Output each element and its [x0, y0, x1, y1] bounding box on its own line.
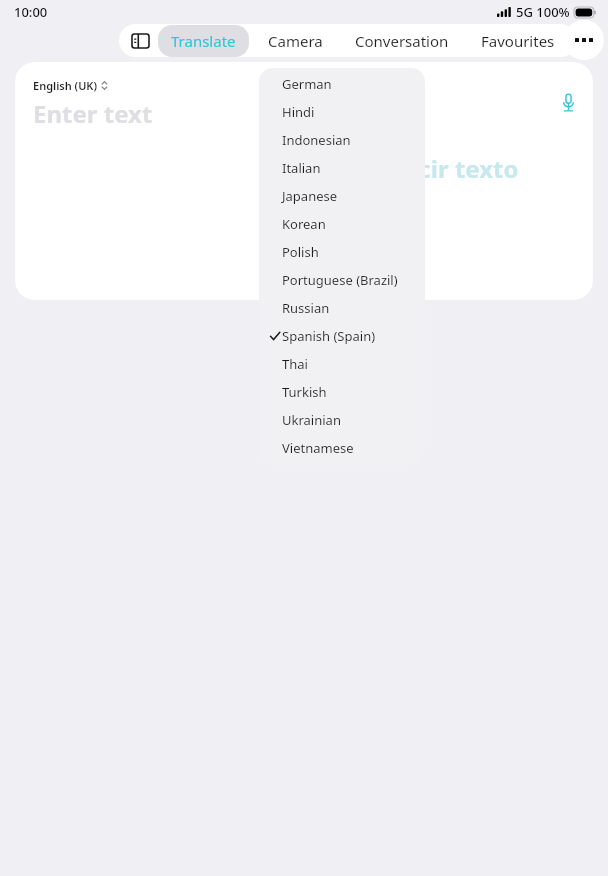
button[interactable]: Polish [259, 238, 425, 266]
button[interactable]: Portuguese (Brazil) [259, 266, 425, 294]
button[interactable]: Indonesian [259, 126, 425, 154]
staticText: Translate [171, 31, 236, 51]
staticText: Japanese [282, 187, 338, 205]
button[interactable]: Ukrainian [259, 406, 425, 434]
button[interactable]: Russian [259, 294, 425, 322]
button[interactable]: Enter text [33, 97, 153, 130]
button[interactable]: Favourites [468, 25, 568, 57]
button[interactable]: Sidebar [125, 26, 155, 56]
button[interactable]: Thai [259, 350, 425, 378]
button[interactable]: German [259, 70, 425, 98]
staticText: 5G 100% [516, 3, 570, 21]
staticText: Turkish [282, 383, 327, 401]
staticText: Polish [282, 243, 319, 261]
staticText: Vietnamese [282, 439, 354, 457]
button[interactable]: Introducir texto [327, 152, 519, 185]
button[interactable]: Speak target text [560, 92, 577, 113]
staticText: Korean [282, 215, 326, 233]
staticText: English (UK) [33, 78, 98, 93]
staticText: Thai [282, 355, 308, 373]
button[interactable]: Italian [259, 154, 425, 182]
button[interactable]: Spanish (Spain) [259, 322, 425, 350]
staticText: Indonesian [282, 131, 351, 149]
staticText: Spanish (Spain) [282, 327, 376, 345]
button[interactable]: Vietnamese [259, 434, 425, 462]
staticText: Hindi [282, 103, 315, 121]
button[interactable]: Conversation [342, 25, 462, 57]
staticText: Portuguese (Brazil) [282, 271, 398, 289]
button[interactable]: Translate [158, 25, 249, 57]
button[interactable]: Hindi [259, 98, 425, 126]
staticText: Camera [268, 31, 323, 51]
staticText: Italian [282, 159, 321, 177]
button[interactable]: Camera [255, 25, 336, 57]
button[interactable]: Japanese [259, 182, 425, 210]
button[interactable]: Turkish [259, 378, 425, 406]
button[interactable]: More options [564, 20, 604, 60]
staticText: Conversation [355, 31, 449, 51]
staticText: German [282, 75, 332, 93]
staticText: Russian [282, 299, 330, 317]
staticText: Favourites [481, 31, 555, 51]
button[interactable]: Korean [259, 210, 425, 238]
staticText: 10:00 [14, 3, 48, 21]
staticText: Ukrainian [282, 411, 341, 429]
button[interactable]: English (UK) [33, 78, 108, 93]
